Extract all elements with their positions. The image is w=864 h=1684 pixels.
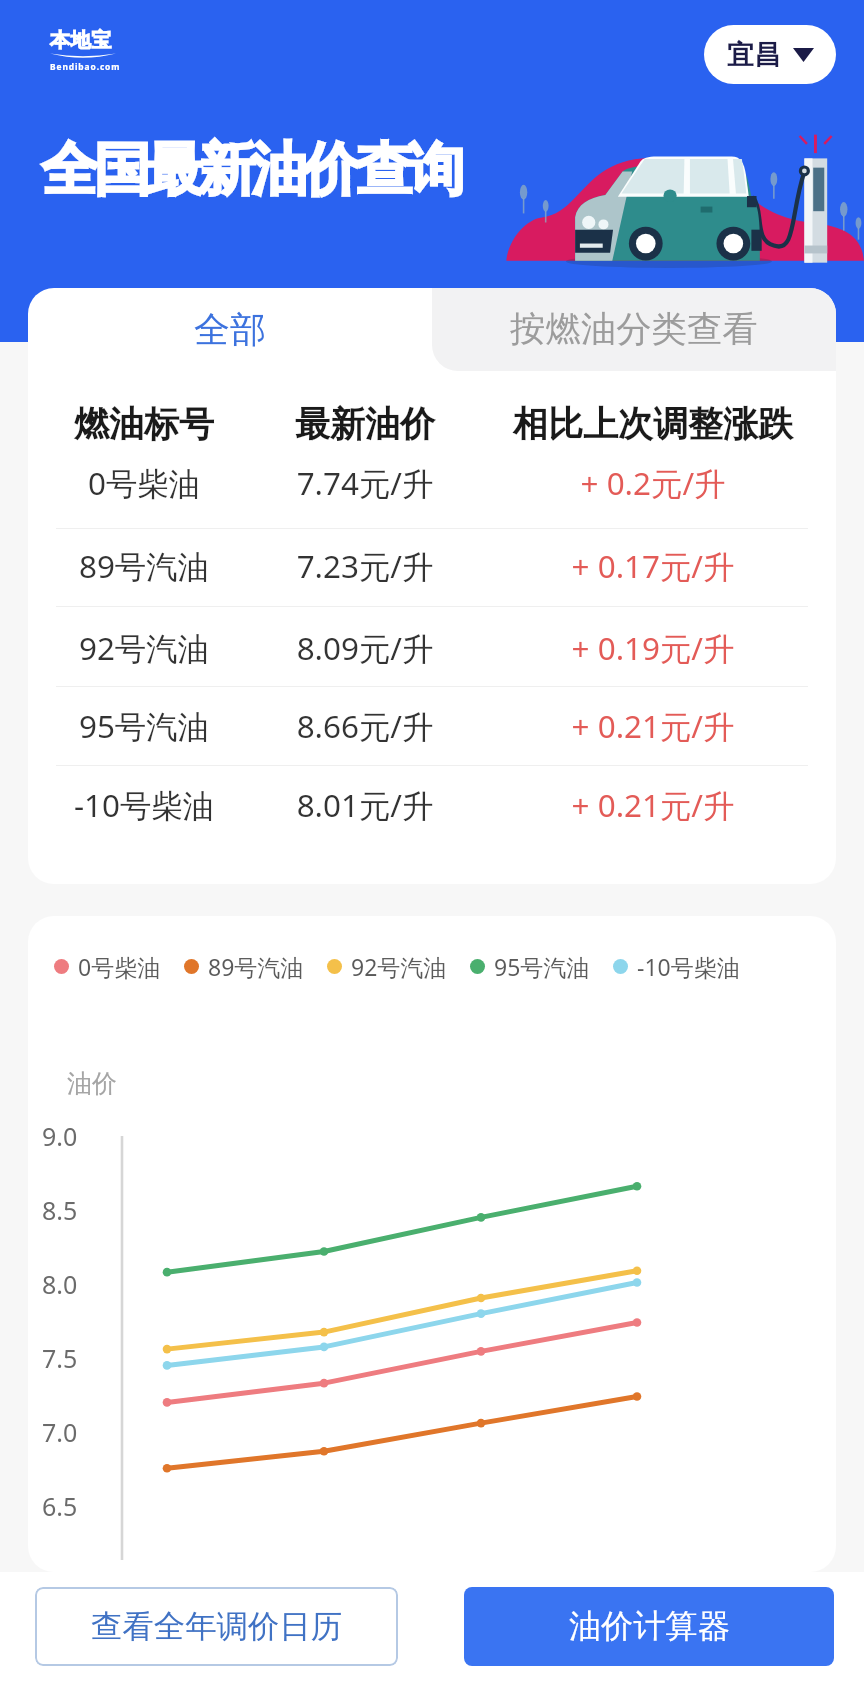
staticText: 8.66元/升	[260, 704, 470, 747]
staticText: 0号柴油	[28, 461, 260, 504]
staticText: 相比上次调整涨跌	[470, 402, 836, 446]
staticText: 95号汽油	[494, 951, 590, 982]
button[interactable]: 查看全年调价日历	[35, 1587, 398, 1666]
staticText: + 0.21元/升	[470, 783, 836, 826]
staticText: 宜昌	[727, 38, 781, 72]
staticText: 8.5	[42, 1193, 78, 1227]
staticText: 8.01元/升	[260, 783, 470, 826]
staticText: 92号汽油	[351, 951, 447, 982]
staticText: 95号汽油	[28, 704, 260, 747]
staticText: 按燃油分类查看	[510, 307, 758, 352]
staticText: + 0.17元/升	[470, 544, 836, 587]
staticText: 8.0	[42, 1267, 78, 1301]
staticText: 全国最新油价查询	[41, 134, 461, 206]
staticText: 92号汽油	[28, 626, 260, 669]
staticText: 燃油标号	[28, 402, 260, 446]
staticText: 查看全年调价日历	[91, 1607, 343, 1647]
staticText: 7.5	[42, 1341, 78, 1375]
button[interactable]: 全部	[28, 288, 432, 371]
staticText: 89号汽油	[208, 951, 304, 982]
staticText: 7.23元/升	[260, 544, 470, 587]
staticText: 7.0	[42, 1415, 78, 1449]
staticText: 油价计算器	[569, 1606, 730, 1647]
button[interactable]: 油价计算器	[464, 1587, 834, 1666]
staticText: + 0.2元/升	[470, 461, 836, 504]
button[interactable]: Select city: 宜昌	[704, 25, 836, 84]
staticText: 7.74元/升	[260, 461, 470, 504]
staticText: -10号柴油	[637, 951, 740, 982]
staticText: 0号柴油	[78, 951, 161, 982]
staticText: 最新油价	[260, 402, 470, 446]
staticText: Bendibao.com	[50, 61, 121, 72]
staticText: 全部	[194, 307, 266, 352]
staticText: + 0.19元/升	[470, 626, 836, 669]
staticText: 本地宝	[50, 28, 112, 53]
staticText: 油价	[67, 1068, 117, 1099]
button[interactable]: 按燃油分类查看	[432, 288, 836, 371]
staticText: 8.09元/升	[260, 626, 470, 669]
staticText: 6.5	[42, 1489, 78, 1523]
button[interactable]: 本地宝 Bendibao home	[50, 28, 121, 70]
staticText: + 0.21元/升	[470, 704, 836, 747]
staticText: 9.0	[42, 1119, 78, 1153]
staticText: 89号汽油	[28, 544, 260, 587]
staticText: -10号柴油	[28, 783, 260, 826]
